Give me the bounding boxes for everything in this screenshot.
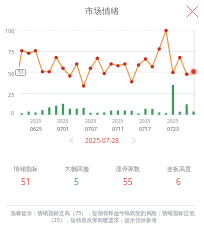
staticText: 2025: [139, 118, 151, 125]
staticText: 2025: [167, 118, 179, 125]
staticText: 0625: [30, 125, 42, 132]
staticText: 50: [8, 70, 15, 76]
staticText: 涨停家数: [116, 165, 140, 173]
staticText: 温馨提示：情绪指标过高（75），短期有释放亏钱效应的风险；情绪指标过低: [10, 209, 195, 216]
staticText: 连板高度: [167, 165, 191, 173]
button[interactable]: Previous day: [64, 133, 78, 147]
staticText: 0707: [85, 125, 97, 132]
button[interactable]: 情绪指标: [0, 165, 51, 188]
button[interactable]: 连板高度: [153, 165, 204, 188]
staticText: 5: [74, 176, 79, 188]
staticText: 0: [11, 109, 15, 115]
staticText: 55: [123, 176, 133, 188]
staticText: 大幅回撤: [65, 165, 89, 173]
staticText: 0717: [139, 125, 151, 132]
staticText: 2025: [30, 118, 42, 125]
staticText: 100: [5, 27, 15, 33]
button[interactable]: 2025-07-28: [78, 133, 126, 147]
staticText: （25），短线有反弹回暖需求；提示仅供参考: [48, 216, 157, 223]
button[interactable]: 大幅回撤: [51, 165, 102, 188]
staticText: 2025: [85, 118, 97, 125]
staticText: 2025-07-28: [85, 136, 119, 145]
staticText: 0711: [112, 125, 124, 132]
staticText: 情绪指标: [14, 165, 38, 173]
staticText: 51: [18, 69, 24, 76]
button[interactable]: Close: [184, 3, 200, 19]
button[interactable]: Next day: [126, 133, 140, 147]
staticText: 0701: [57, 125, 69, 132]
staticText: 75: [8, 48, 15, 54]
staticText: 51: [21, 176, 31, 188]
staticText: 25: [8, 91, 15, 97]
button[interactable]: 涨停家数: [102, 165, 153, 188]
staticText: 6: [176, 176, 181, 188]
staticText: 2025: [57, 118, 69, 125]
staticText: 2025: [112, 118, 124, 125]
staticText: 0723: [167, 125, 179, 132]
staticText: 市场情绪: [85, 6, 119, 17]
